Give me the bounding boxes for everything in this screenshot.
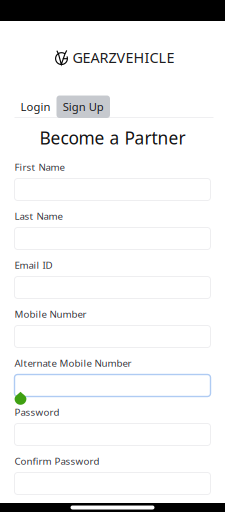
staticText: Last Name xyxy=(14,209,62,223)
button[interactable]: Login xyxy=(14,96,56,118)
button[interactable]: Email ID xyxy=(14,263,210,298)
button[interactable]: Mobile Number xyxy=(14,312,210,347)
staticText: Email ID xyxy=(14,258,52,272)
staticText: Mobile Number xyxy=(14,307,86,321)
staticText: Password xyxy=(14,405,59,419)
staticText: Confirm Password xyxy=(14,454,99,468)
button[interactable]: Alternate Mobile Number xyxy=(14,361,210,396)
staticText: First Name xyxy=(14,160,64,174)
staticText: Alternate Mobile Number xyxy=(14,356,131,370)
staticText: Sign Up xyxy=(63,99,104,114)
button[interactable]: Confirm Password xyxy=(14,459,210,494)
staticText: Login xyxy=(20,99,50,114)
button[interactable]: Sign Up xyxy=(56,95,110,118)
staticText: Become a Partner xyxy=(39,126,185,150)
staticText: GEARZVEHICLE xyxy=(73,48,175,67)
button[interactable]: First Name xyxy=(14,165,210,200)
button[interactable]: Password xyxy=(14,410,210,445)
button[interactable]: Last Name xyxy=(14,214,210,249)
